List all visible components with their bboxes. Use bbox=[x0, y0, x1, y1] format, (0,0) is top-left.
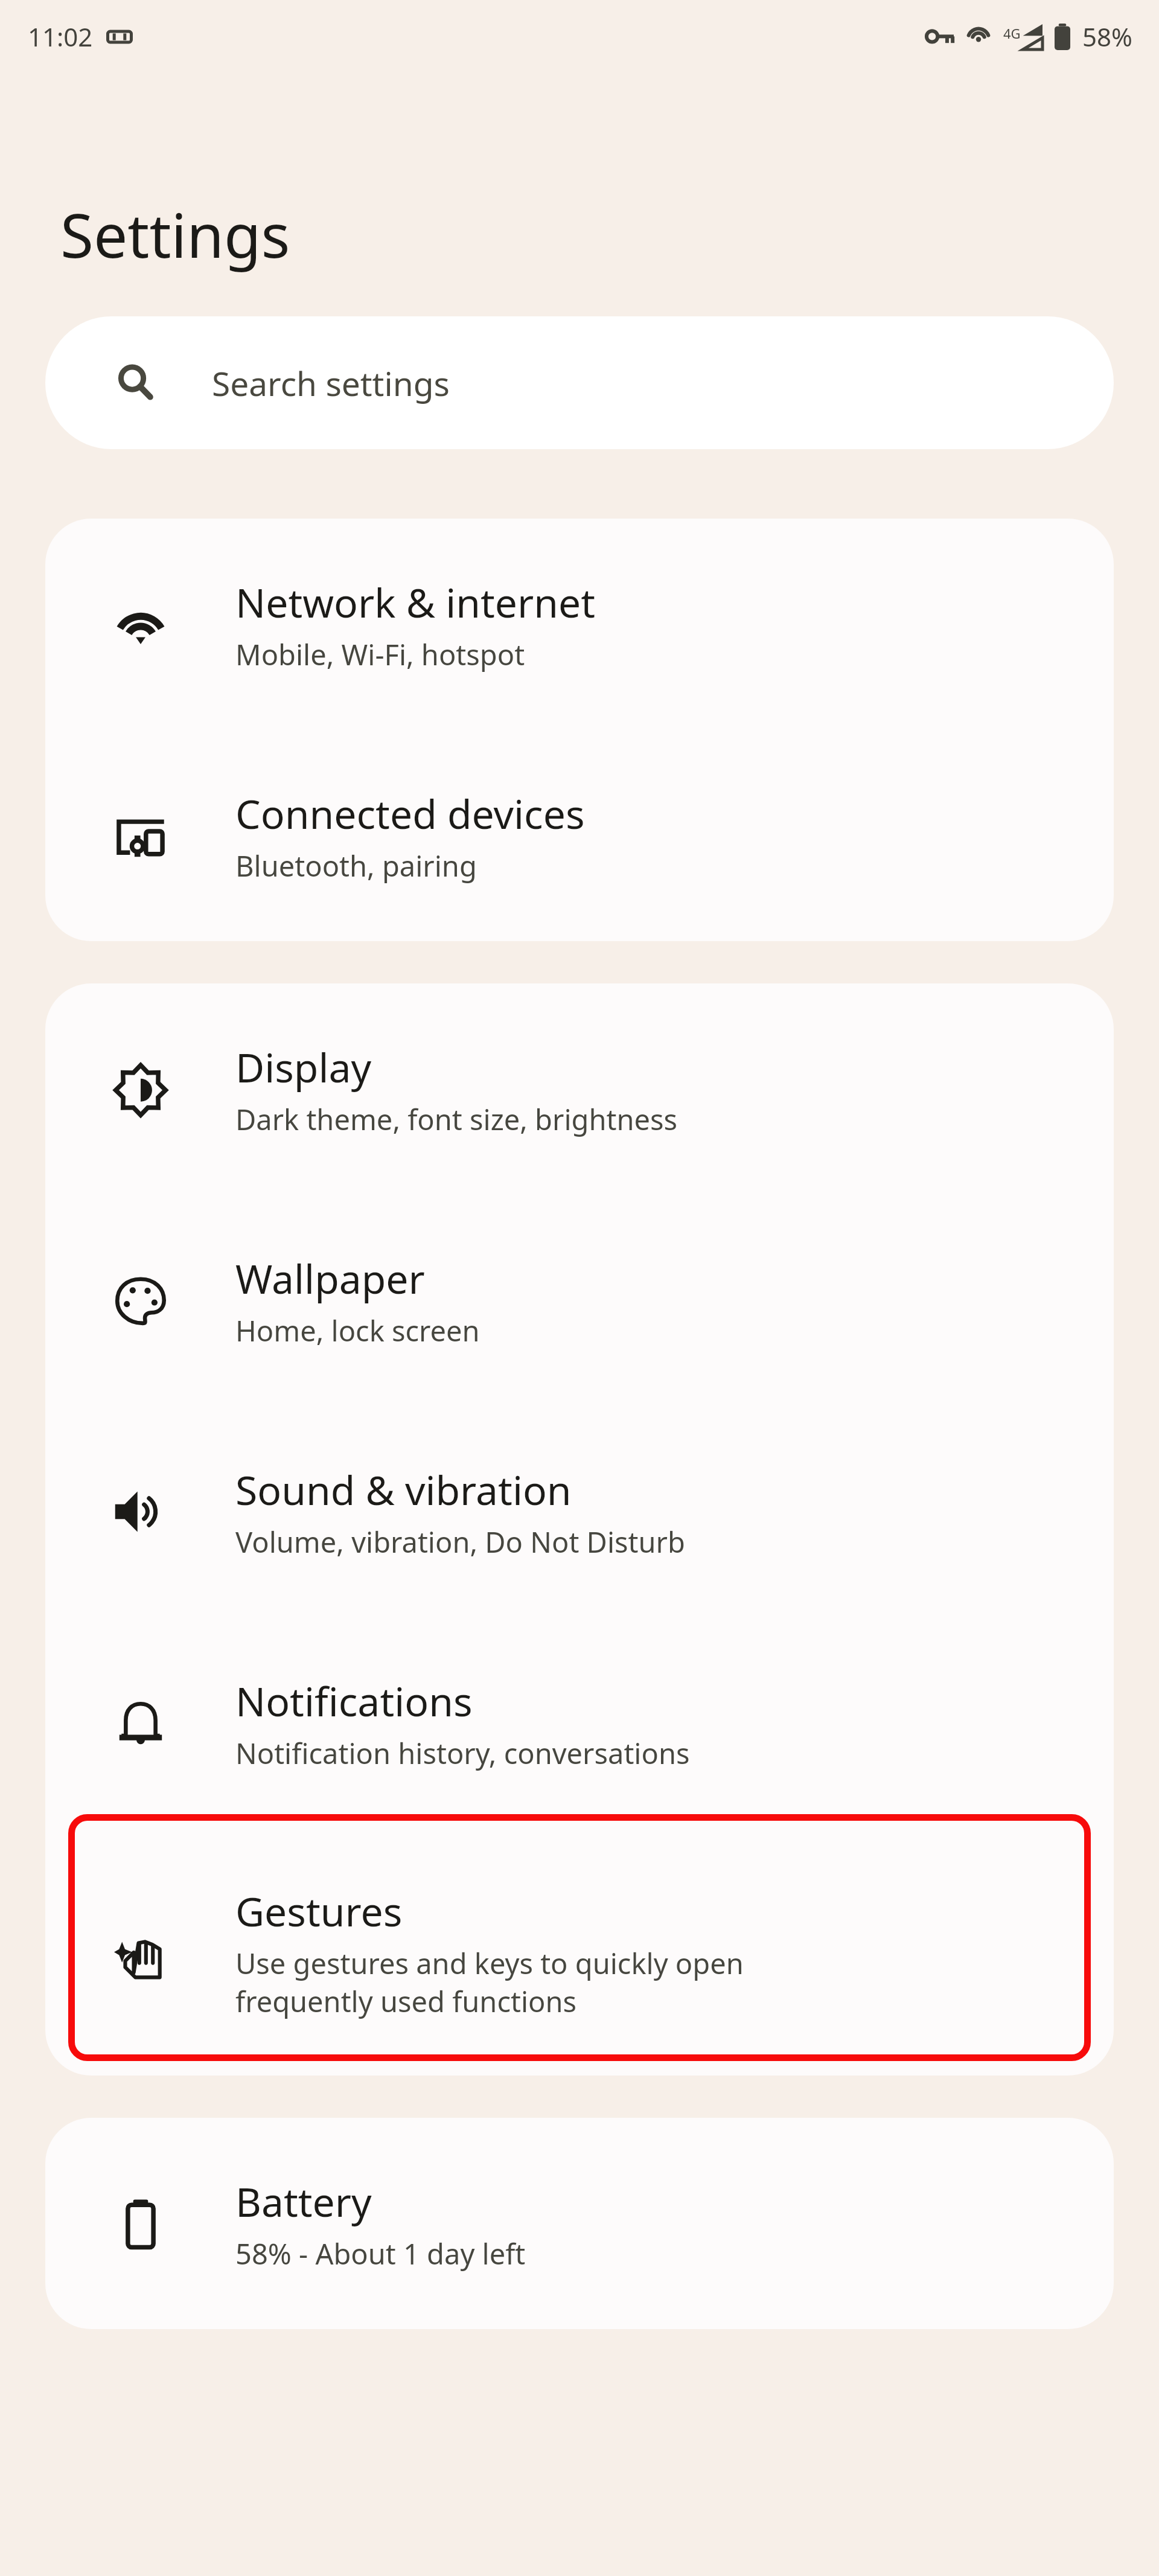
staticText: 11:02 bbox=[28, 19, 93, 54]
staticText: 58% - About 1 day left bbox=[235, 2234, 526, 2273]
staticText: Home, lock screen bbox=[235, 1311, 480, 1350]
staticText: Battery bbox=[235, 2174, 372, 2228]
button[interactable]: Gestures bbox=[45, 1829, 1114, 2076]
staticText: Connected devices bbox=[235, 786, 585, 840]
staticText: Search settings bbox=[212, 360, 450, 406]
staticText: Bluetooth, pairing bbox=[235, 846, 477, 885]
staticText: Wallpaper bbox=[235, 1251, 425, 1305]
staticText: Sound & vibration bbox=[235, 1462, 572, 1517]
staticText: 58% bbox=[1082, 19, 1132, 54]
button[interactable]: Sound & vibration bbox=[45, 1406, 1114, 1617]
staticText: 4G bbox=[1003, 24, 1021, 42]
staticText: Use gestures and keys to quickly open fr… bbox=[235, 1944, 744, 2021]
staticText: Mobile, Wi-Fi, hotspot bbox=[235, 635, 525, 674]
staticText: Settings bbox=[60, 193, 290, 275]
button[interactable]: Battery bbox=[45, 2118, 1114, 2329]
button[interactable]: Connected devices bbox=[45, 730, 1114, 941]
button[interactable]: Wallpaper bbox=[45, 1195, 1114, 1406]
staticText: Gestures bbox=[235, 1884, 403, 1938]
staticText: Dark theme, font size, brightness bbox=[235, 1100, 678, 1139]
staticText: Notifications bbox=[235, 1673, 473, 1728]
staticText: Display bbox=[235, 1040, 372, 1094]
button[interactable]: Display bbox=[45, 983, 1114, 1195]
button[interactable]: Network & internet bbox=[45, 519, 1114, 730]
staticText: Notification history, conversations bbox=[235, 1734, 690, 1772]
button[interactable]: Notifications bbox=[45, 1617, 1114, 1829]
other: Search bbox=[117, 364, 154, 401]
staticText: Network & internet bbox=[235, 575, 596, 629]
button[interactable]: Search bbox=[45, 316, 1114, 449]
staticText: Volume, vibration, Do Not Disturb bbox=[235, 1523, 685, 1561]
